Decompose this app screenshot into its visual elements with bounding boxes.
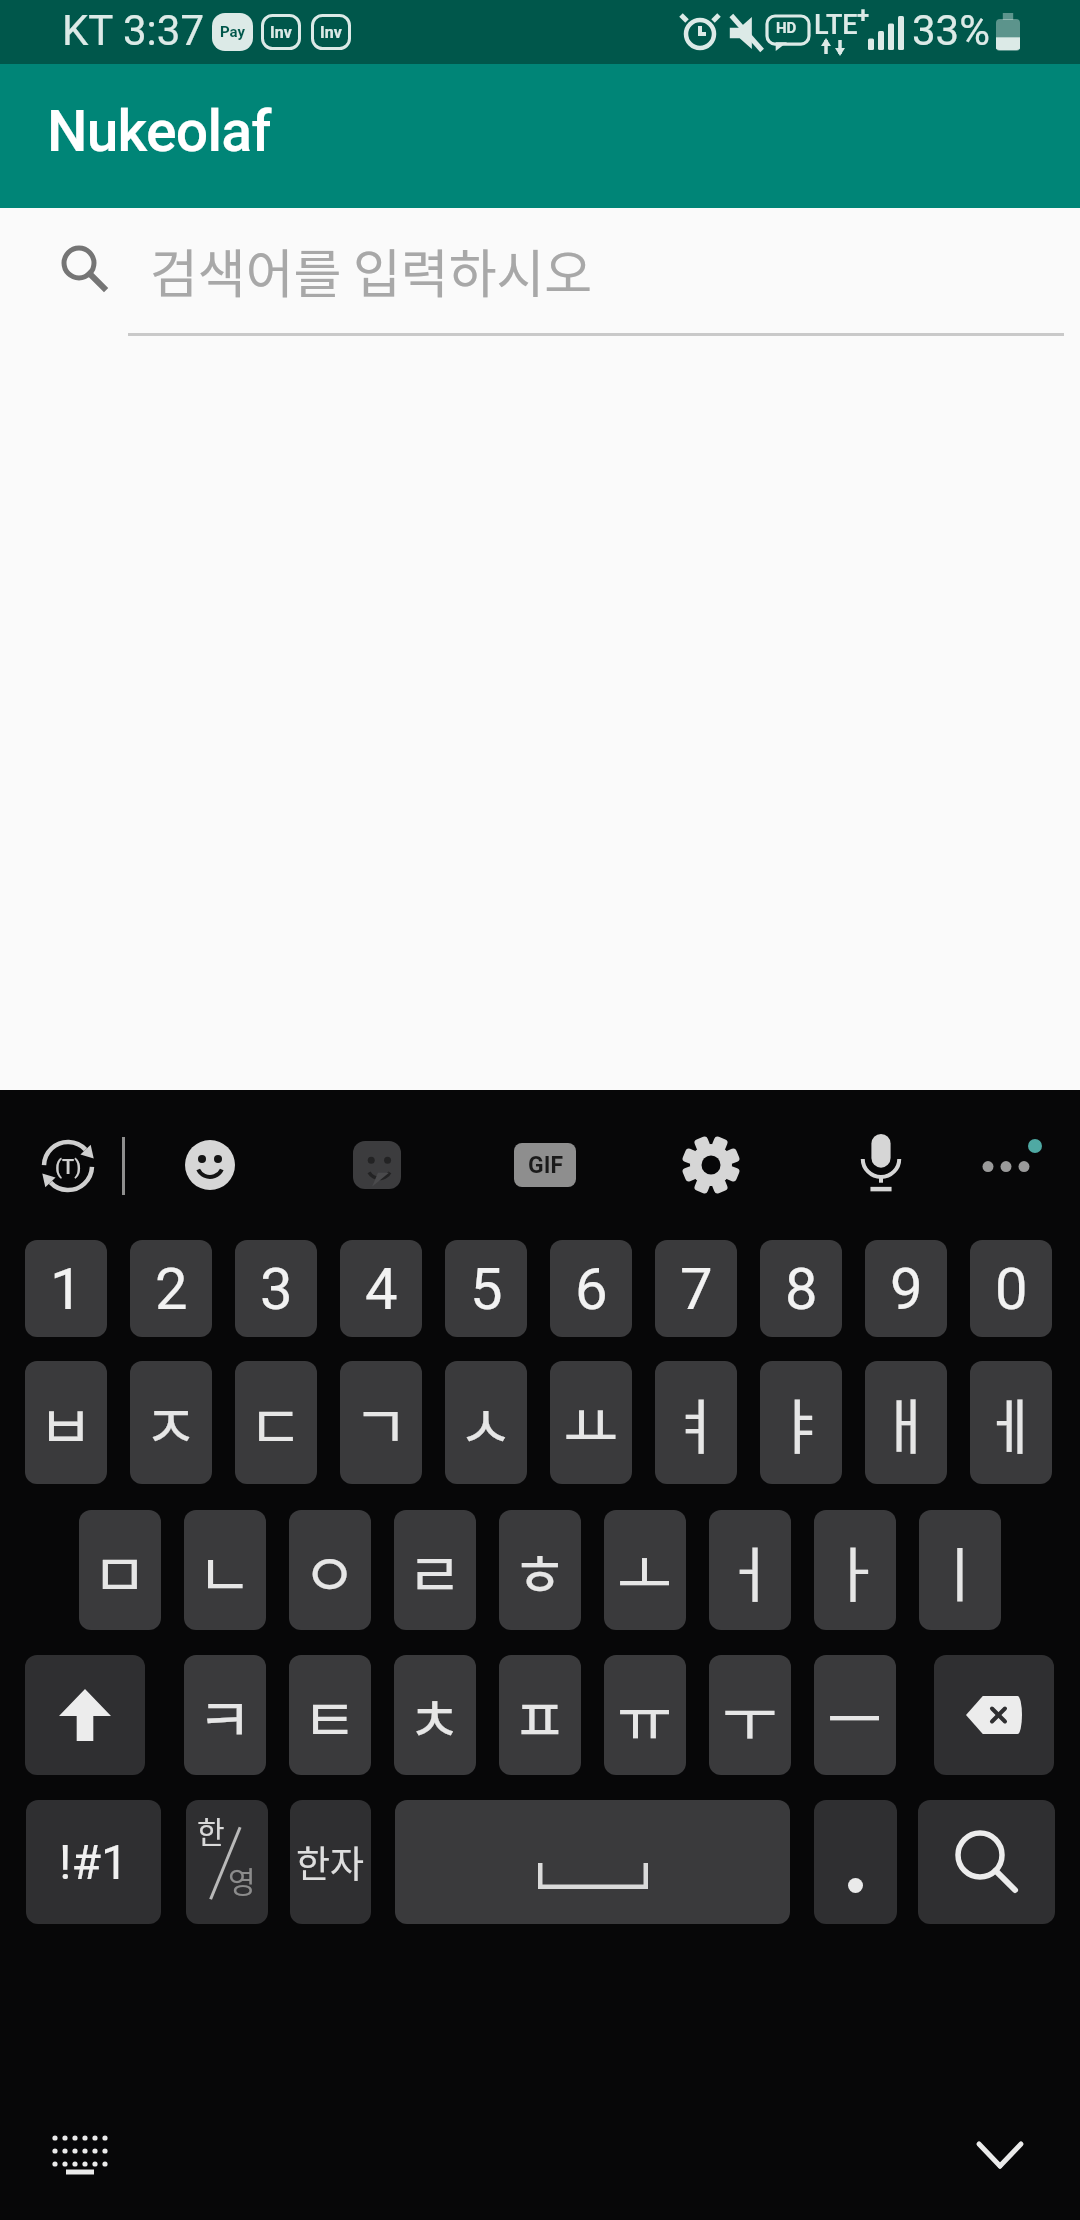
staticText: GIF <box>528 1152 563 1179</box>
button[interactable]: !#1 <box>26 1800 161 1924</box>
button[interactable]: 7 <box>655 1240 737 1337</box>
button[interactable]: ㅡ <box>814 1655 896 1775</box>
staticText: ㅇ <box>302 1527 358 1614</box>
staticText: 3 <box>260 1255 293 1323</box>
staticText: 영 <box>228 1858 256 1901</box>
button[interactable]: ㄱ <box>340 1361 422 1484</box>
staticText: 검색어를 입력하시오 <box>150 233 593 308</box>
staticText: ㅛ <box>563 1379 619 1466</box>
staticText: ㅐ <box>878 1379 934 1466</box>
staticText: ㅕ <box>668 1379 724 1466</box>
button[interactable]: ㅛ <box>550 1361 632 1484</box>
button[interactable]: ㅋ <box>184 1655 266 1775</box>
button[interactable] <box>395 1800 790 1924</box>
button[interactable]: 8 <box>760 1240 842 1337</box>
staticText: ㅊ <box>407 1672 463 1759</box>
staticText: Pay <box>220 23 246 41</box>
button[interactable] <box>934 1655 1054 1775</box>
staticText: 0 <box>995 1255 1028 1323</box>
staticText: ㄱ <box>353 1379 409 1466</box>
staticText: 1 <box>50 1255 83 1323</box>
staticText: LTE <box>814 9 858 41</box>
button[interactable]: ㅂ <box>25 1361 107 1484</box>
button[interactable]: ㅁ <box>79 1510 161 1630</box>
button[interactable]: ㅌ <box>289 1655 371 1775</box>
staticText: ㅎ <box>512 1527 568 1614</box>
staticText: ㅜ <box>722 1672 778 1759</box>
staticText: 한자 <box>296 1835 365 1889</box>
staticText: ㅂ <box>38 1379 94 1466</box>
staticText: ㅌ <box>302 1672 358 1759</box>
button[interactable] <box>337 1125 417 1205</box>
button[interactable]: ㅍ <box>499 1655 581 1775</box>
staticText: ㅏ <box>827 1527 883 1614</box>
button[interactable]: ㅈ <box>130 1361 212 1484</box>
staticText: ㅡ <box>827 1672 883 1759</box>
button[interactable]: ㅕ <box>655 1361 737 1484</box>
staticText: 33% <box>912 6 990 55</box>
staticText: ㅔ <box>983 1379 1039 1466</box>
button[interactable]: 3 <box>235 1240 317 1337</box>
button[interactable]: ㅣ <box>919 1510 1001 1630</box>
staticText: 6 <box>575 1255 608 1323</box>
staticText: KT 3:37 <box>62 6 204 55</box>
button[interactable]: ㅑ <box>760 1361 842 1484</box>
button[interactable]: ㅊ <box>394 1655 476 1775</box>
button[interactable]: ㅇ <box>289 1510 371 1630</box>
button[interactable]: ㅎ <box>499 1510 581 1630</box>
button[interactable] <box>671 1125 751 1205</box>
button[interactable]: 2 <box>130 1240 212 1337</box>
button[interactable]: ㅐ <box>865 1361 947 1484</box>
staticText: 8 <box>785 1255 818 1323</box>
button[interactable]: ㅜ <box>709 1655 791 1775</box>
button[interactable] <box>25 1655 145 1775</box>
button[interactable] <box>170 1125 250 1205</box>
button[interactable]: ㅠ <box>604 1655 686 1775</box>
button[interactable] <box>40 2115 120 2195</box>
button[interactable]: ㅏ <box>814 1510 896 1630</box>
button[interactable]: (T) <box>28 1126 108 1206</box>
button[interactable]: 한자 <box>290 1800 371 1924</box>
staticText: 7 <box>680 1255 713 1323</box>
button[interactable]: ㅔ <box>970 1361 1052 1484</box>
staticText: ㄹ <box>407 1527 463 1614</box>
staticText: 5 <box>470 1255 503 1323</box>
button[interactable] <box>814 1800 897 1924</box>
button[interactable]: 9 <box>865 1240 947 1337</box>
staticText: ㅣ <box>932 1527 988 1614</box>
button[interactable] <box>960 2115 1040 2195</box>
staticText: + <box>857 3 870 29</box>
staticText: 한 <box>197 1808 225 1851</box>
button[interactable]: 검색어를 입력하시오 <box>0 208 1080 343</box>
button[interactable]: 한 <box>186 1800 268 1924</box>
staticText: HD <box>776 19 797 37</box>
button[interactable]: 4 <box>340 1240 422 1337</box>
button[interactable]: ㄷ <box>235 1361 317 1484</box>
button[interactable]: ㅓ <box>709 1510 791 1630</box>
button[interactable]: ㅅ <box>445 1361 527 1484</box>
staticText: ㅑ <box>773 1379 829 1466</box>
staticText: ㄴ <box>197 1527 253 1614</box>
button[interactable]: ㄹ <box>394 1510 476 1630</box>
staticText: ㅠ <box>617 1672 673 1759</box>
staticText: Inv <box>320 23 342 42</box>
button[interactable] <box>918 1800 1055 1924</box>
staticText: ㅗ <box>617 1527 673 1614</box>
button[interactable]: Nukeolaf <box>0 64 1080 208</box>
button[interactable]: GIF <box>505 1125 585 1205</box>
staticText: (T) <box>55 1155 82 1178</box>
button[interactable]: 6 <box>550 1240 632 1337</box>
staticText: ㅓ <box>722 1527 778 1614</box>
staticText: ㄷ <box>248 1379 304 1466</box>
staticText: 2 <box>155 1255 188 1323</box>
button[interactable] <box>968 1125 1058 1205</box>
staticText: Nukeolaf <box>47 98 271 165</box>
button[interactable]: ㅗ <box>604 1510 686 1630</box>
button[interactable] <box>841 1123 921 1203</box>
button[interactable]: 5 <box>445 1240 527 1337</box>
staticText: ㅅ <box>458 1379 514 1466</box>
button[interactable]: 1 <box>25 1240 107 1337</box>
button[interactable]: ㄴ <box>184 1510 266 1630</box>
button[interactable]: 0 <box>970 1240 1052 1337</box>
staticText: ㅈ <box>143 1379 199 1466</box>
